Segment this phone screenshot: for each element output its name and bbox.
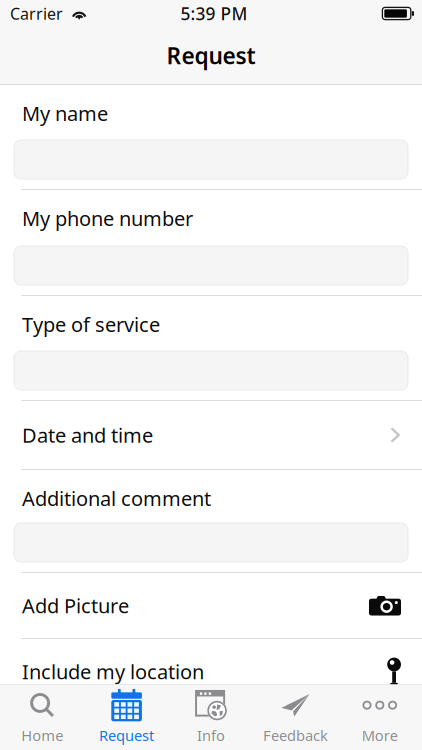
button[interactable]: Add Picture: [0, 573, 422, 638]
staticText: Add Picture: [22, 592, 129, 619]
staticText: More: [362, 726, 398, 745]
staticText: 5:39 PM: [180, 2, 247, 25]
button[interactable]: My phone number: [0, 190, 422, 295]
button[interactable]: My name: [0, 85, 422, 189]
staticText: Date and time: [22, 422, 153, 448]
button[interactable]: Additional comment: [0, 470, 422, 572]
button[interactable]: Feedback: [253, 684, 338, 750]
button[interactable]: Type of service: [0, 296, 422, 400]
button[interactable]: Info: [169, 684, 253, 750]
staticText: Home: [21, 726, 63, 745]
staticText: Request: [99, 726, 154, 745]
staticText: Type of service: [22, 311, 160, 338]
button[interactable]: Date and time: [0, 401, 422, 469]
staticText: Feedback: [263, 726, 328, 745]
button[interactable]: Include my location: [0, 639, 422, 704]
staticText: My name: [22, 100, 108, 127]
staticText: Info: [197, 726, 225, 745]
button[interactable]: More: [338, 684, 422, 750]
button[interactable]: Request: [84, 684, 169, 750]
staticText: My phone number: [22, 205, 193, 232]
staticText: Carrier: [10, 3, 63, 24]
button[interactable]: Home: [0, 684, 84, 750]
staticText: Include my location: [22, 658, 204, 685]
staticText: Request: [166, 40, 255, 70]
staticText: Additional comment: [22, 485, 211, 512]
